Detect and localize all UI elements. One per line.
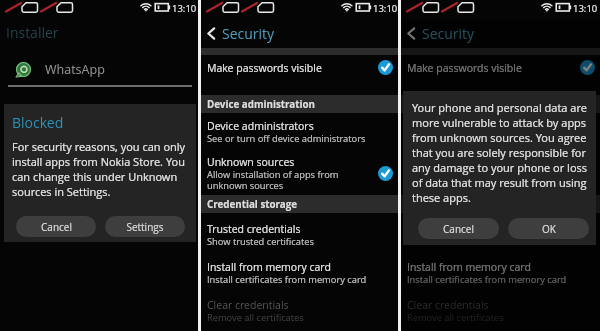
button[interactable]: Back <box>201 21 398 45</box>
staticText: OK <box>542 222 556 236</box>
staticText: WhatsApp <box>45 61 105 78</box>
staticText: unknown sources <box>407 179 484 192</box>
button[interactable]: Clear credentials <box>201 298 398 323</box>
staticText: Allow installation of apps from <box>207 168 339 181</box>
staticText: Install from memory card <box>207 260 331 274</box>
staticText: Trusted credentials <box>207 222 301 236</box>
button[interactable]: Back <box>401 21 600 45</box>
staticText: Cancel <box>41 220 72 234</box>
staticText: Allow installation of apps from <box>407 168 539 181</box>
button[interactable]: Device administrators <box>201 119 398 144</box>
staticText: Credential storage <box>207 198 298 211</box>
staticText: Device administrators <box>207 119 314 133</box>
button[interactable]: Unknown sources <box>201 155 398 191</box>
staticText: Device administrators <box>407 119 514 133</box>
staticText: Trusted credentials <box>407 222 501 236</box>
staticText: For security reasons, you can only insta… <box>12 139 186 199</box>
staticText: 13:10 <box>573 2 598 15</box>
staticText: Unknown sources <box>207 155 295 169</box>
staticText: Show trusted certificates <box>407 235 514 248</box>
staticText: Installer <box>6 23 59 42</box>
button[interactable]: WhatsApp <box>0 60 198 78</box>
staticText: Remove all certificates <box>207 311 304 324</box>
staticText: See or turn off device administrators <box>207 132 366 145</box>
staticText: 13:10 <box>172 2 197 15</box>
staticText: 13:10 <box>373 2 398 15</box>
button[interactable]: Trusted credentials <box>401 222 600 247</box>
button[interactable]: Device administrators <box>401 119 600 144</box>
staticText: Clear credentials <box>207 298 289 312</box>
staticText: Cancel <box>443 222 474 236</box>
staticText: Device administration <box>407 98 515 111</box>
staticText: Unknown sources <box>407 155 495 169</box>
staticText: Security <box>222 24 275 43</box>
button[interactable]: Cancel <box>16 216 96 237</box>
button[interactable]: Install from memory card <box>201 260 398 285</box>
staticText: Security <box>422 24 475 43</box>
staticText: Make passwords visible <box>407 61 522 75</box>
staticText: Install from memory card <box>407 260 531 274</box>
staticText: Make passwords visible <box>207 61 322 75</box>
staticText: Settings <box>126 220 164 234</box>
button[interactable]: Trusted credentials <box>201 222 398 247</box>
button[interactable]: Unknown sources <box>401 155 600 191</box>
staticText: Blocked <box>12 113 64 132</box>
button[interactable]: Cancel <box>418 218 499 239</box>
staticText: Install certificates from memory card <box>407 273 567 286</box>
staticText: See or turn off device administrators <box>407 132 566 145</box>
button[interactable]: Make passwords visible <box>401 55 600 80</box>
staticText: Remove all certificates <box>407 311 504 324</box>
staticText: Clear credentials <box>407 298 489 312</box>
button[interactable]: Settings <box>105 216 185 237</box>
staticText: unknown sources <box>207 179 284 192</box>
staticText: Show trusted certificates <box>207 235 314 248</box>
staticText: Install certificates from memory card <box>207 273 367 286</box>
button[interactable]: Clear credentials <box>401 298 600 323</box>
staticText: Credential storage <box>407 198 498 211</box>
button[interactable]: OK <box>508 218 589 239</box>
staticText: Your phone and personal data are more vu… <box>412 100 588 205</box>
button[interactable]: Make passwords visible <box>201 55 398 80</box>
button[interactable]: Install from memory card <box>401 260 600 285</box>
staticText: Device administration <box>207 98 315 111</box>
